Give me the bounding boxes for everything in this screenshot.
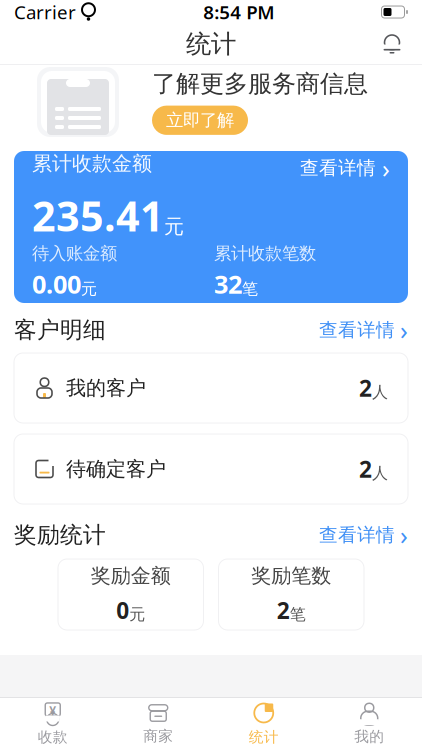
button[interactable]: 奖励金额: [58, 559, 203, 630]
button[interactable]: 商家: [105, 698, 211, 750]
button[interactable]: 我的: [316, 698, 422, 750]
staticText: 元: [164, 214, 184, 239]
staticText: ›: [400, 313, 408, 347]
staticText: 立即了解: [166, 110, 234, 131]
button[interactable]: 奖励笔数: [218, 559, 364, 630]
button[interactable]: ¥: [0, 698, 105, 750]
staticText: 0.00: [32, 267, 81, 301]
staticText: 查看详情: [319, 523, 395, 546]
staticText: 查看详情: [319, 318, 395, 341]
staticText: 奖励统计: [14, 521, 106, 549]
staticText: 我的: [354, 727, 384, 745]
staticText: 奖励金额: [91, 564, 171, 588]
staticText: 收款: [38, 728, 68, 746]
staticText: 235.41: [32, 188, 164, 243]
button[interactable]: 查看详情: [319, 514, 408, 556]
button[interactable]: 我的客户: [0, 353, 422, 423]
staticText: ›: [400, 518, 408, 552]
staticText: 2: [359, 454, 372, 484]
staticText: 元: [129, 605, 145, 624]
button[interactable]: 待确定客户: [0, 434, 422, 504]
staticText: Carrier: [14, 0, 76, 24]
staticText: 客户明细: [14, 316, 106, 344]
staticText: 待入账金额: [32, 243, 117, 264]
staticText: 查看详情: [300, 157, 376, 179]
staticText: 商家: [143, 727, 173, 745]
staticText: 统计: [186, 28, 236, 59]
staticText: ›: [382, 151, 390, 185]
staticText: 人: [372, 382, 388, 402]
staticText: 人: [372, 463, 388, 483]
staticText: 统计: [249, 728, 279, 746]
staticText: 了解更多服务商信息: [152, 69, 368, 99]
button[interactable]: 累计收款金额: [0, 139, 422, 303]
staticText: 元: [81, 279, 97, 299]
staticText: 0: [116, 595, 129, 625]
staticText: 待确定客户: [66, 457, 166, 481]
staticText: 32: [214, 267, 242, 301]
button[interactable]: 查看详情: [319, 309, 408, 351]
staticText: 笔: [242, 279, 258, 299]
staticText: 累计收款笔数: [214, 243, 316, 264]
staticText: 累计收款金额: [32, 151, 152, 176]
button[interactable]: 了解更多服务商信息: [0, 65, 422, 139]
button[interactable]: 统计: [211, 698, 316, 750]
staticText: 奖励笔数: [251, 564, 331, 588]
staticText: 8:54 PM: [203, 0, 274, 24]
staticText: 2: [277, 595, 290, 625]
staticText: 我的客户: [66, 376, 146, 400]
staticText: 2: [359, 373, 372, 403]
staticText: ¥: [49, 702, 56, 718]
button[interactable]: 通知: [370, 24, 414, 64]
staticText: 笔: [290, 605, 306, 624]
